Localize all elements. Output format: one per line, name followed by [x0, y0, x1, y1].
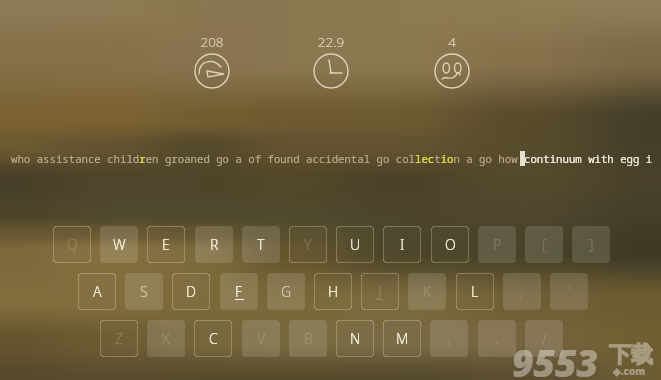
- staticText: O: [445, 235, 456, 254]
- button[interactable]: L: [456, 273, 494, 310]
- staticText: Y: [304, 235, 312, 254]
- staticText: ]: [589, 235, 594, 254]
- staticText: ': [568, 282, 571, 301]
- button[interactable]: G: [267, 273, 305, 310]
- staticText: S: [140, 282, 148, 301]
- button[interactable]: K: [408, 273, 446, 310]
- button[interactable]: ]: [572, 226, 610, 263]
- staticText: C: [209, 329, 218, 348]
- button[interactable]: D: [172, 273, 210, 310]
- button[interactable]: Typing text: [11, 152, 653, 167]
- button[interactable]: Q: [53, 226, 91, 263]
- button[interactable]: Z: [100, 320, 138, 357]
- button[interactable]: 22.9: [291, 33, 371, 95]
- button[interactable]: ': [550, 273, 588, 310]
- button[interactable]: J: [361, 273, 399, 310]
- staticText: P: [493, 235, 502, 254]
- staticText: U: [350, 235, 361, 254]
- button[interactable]: W: [100, 226, 138, 263]
- staticText: D: [186, 282, 196, 301]
- staticText: 22.9: [291, 33, 371, 95]
- staticText: ,: [447, 329, 451, 348]
- staticText: L: [471, 282, 479, 301]
- staticText: B: [304, 329, 313, 348]
- staticText: /: [542, 329, 547, 348]
- staticText: 4: [412, 33, 492, 95]
- button[interactable]: .: [478, 320, 516, 357]
- staticText: J: [378, 282, 382, 301]
- button[interactable]: I: [383, 226, 421, 263]
- button[interactable]: E: [147, 226, 185, 263]
- button[interactable]: B: [289, 320, 327, 357]
- button[interactable]: U: [336, 226, 374, 263]
- button[interactable]: V: [242, 320, 280, 357]
- button[interactable]: R: [195, 226, 233, 263]
- staticText: N: [350, 329, 361, 348]
- button[interactable]: ,: [430, 320, 468, 357]
- button[interactable]: S: [125, 273, 163, 310]
- staticText: K: [423, 282, 432, 301]
- staticText: 9553: [512, 337, 598, 380]
- staticText: [: [542, 235, 547, 254]
- staticText: G: [281, 282, 292, 301]
- button[interactable]: O: [431, 226, 469, 263]
- staticText: T: [257, 235, 265, 254]
- staticText: R: [210, 235, 219, 254]
- button[interactable]: F: [220, 273, 258, 310]
- staticText: 208: [172, 33, 252, 95]
- staticText: F: [235, 282, 243, 301]
- button[interactable]: X: [147, 320, 185, 357]
- staticText: Z: [115, 329, 124, 348]
- button[interactable]: A: [78, 273, 116, 310]
- button[interactable]: C: [194, 320, 232, 357]
- button[interactable]: 4: [412, 33, 492, 95]
- staticText: A: [93, 282, 102, 301]
- staticText: H: [328, 282, 339, 301]
- button[interactable]: ;: [503, 273, 541, 310]
- button[interactable]: P: [478, 226, 516, 263]
- button[interactable]: [: [525, 226, 563, 263]
- button[interactable]: T: [242, 226, 280, 263]
- staticText: M: [396, 329, 409, 348]
- staticText: I: [400, 235, 405, 254]
- staticText: Q: [67, 235, 78, 254]
- staticText: ◆.com: [613, 364, 646, 378]
- staticText: 下载: [609, 341, 653, 369]
- staticText: X: [162, 329, 170, 348]
- button[interactable]: Y: [289, 226, 327, 263]
- button[interactable]: /: [525, 320, 563, 357]
- button[interactable]: 208: [172, 33, 252, 95]
- staticText: E: [162, 235, 170, 254]
- staticText: V: [257, 329, 266, 348]
- button[interactable]: M: [383, 320, 421, 357]
- button[interactable]: H: [314, 273, 352, 310]
- button[interactable]: N: [336, 320, 374, 357]
- staticText: who assistance children groaned go a of …: [11, 152, 653, 167]
- staticText: ;: [520, 282, 524, 301]
- staticText: W: [113, 235, 126, 254]
